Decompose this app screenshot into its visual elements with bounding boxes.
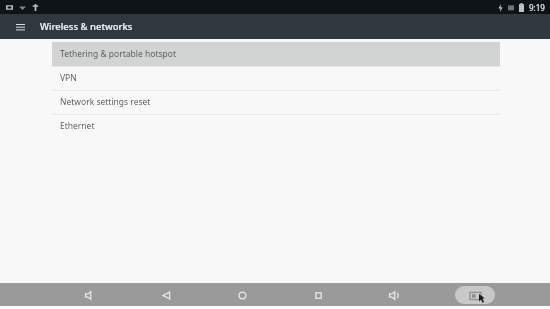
button[interactable]: Network settings reset	[52, 90, 500, 114]
staticText: 9:19	[529, 2, 545, 13]
staticText: VPN	[60, 72, 77, 84]
button[interactable]: Open navigation menu	[10, 17, 30, 37]
button[interactable]: VPN	[52, 66, 500, 90]
button[interactable]: Volume up	[379, 284, 409, 306]
staticText: Network settings reset	[60, 96, 151, 108]
staticText: Ethernet	[60, 120, 95, 132]
button[interactable]: Home	[227, 284, 257, 306]
button[interactable]: Recent apps	[303, 284, 333, 306]
button[interactable]: Tethering & portable hotspot	[52, 42, 500, 66]
button[interactable]: Ethernet	[52, 114, 500, 138]
button[interactable]: Back	[151, 284, 181, 306]
button[interactable]: Screenshot	[455, 286, 495, 304]
button[interactable]: Volume down	[75, 284, 105, 306]
staticText: Wireless & networks	[40, 20, 133, 33]
staticText: Tethering & portable hotspot	[60, 48, 176, 60]
